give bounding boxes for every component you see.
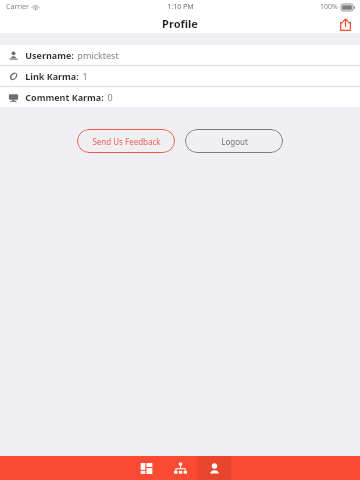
staticText: Comment Karma: (25, 91, 104, 103)
button[interactable]: Logout (185, 129, 283, 153)
staticText: pmicktest (77, 49, 119, 61)
button[interactable]: Profile (197, 456, 231, 480)
button[interactable]: Link Karma: (0, 66, 360, 86)
staticText: Username: (25, 49, 74, 61)
button[interactable]: Share (336, 15, 354, 33)
staticText: Logout (221, 136, 248, 147)
staticText: Profile (162, 16, 198, 31)
staticText: Link Karma: (25, 70, 79, 82)
button[interactable]: Send Us Feedback (77, 129, 175, 153)
button[interactable]: Subreddits (163, 456, 197, 480)
staticText: 100% (320, 2, 338, 12)
button[interactable]: Dashboard (129, 456, 163, 480)
button[interactable]: Username: (0, 45, 360, 65)
staticText: 1:10 PM (167, 2, 194, 12)
staticText: 0 (107, 91, 113, 103)
staticText: Send Us Feedback (92, 136, 161, 147)
button[interactable]: Comment Karma: (0, 87, 360, 107)
staticText: 1 (82, 70, 88, 82)
staticText: Carrier (6, 2, 29, 12)
